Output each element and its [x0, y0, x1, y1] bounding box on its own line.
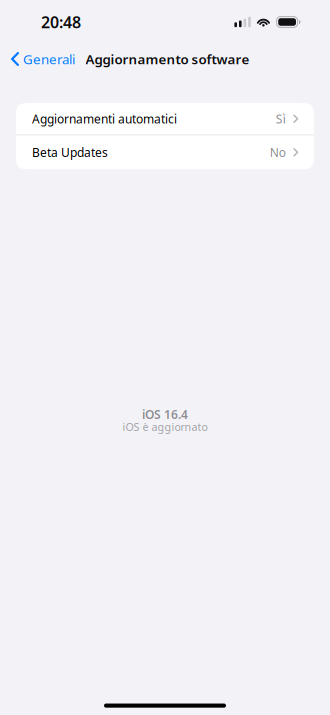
staticText: Aggiornamento software: [85, 50, 249, 68]
staticText: Generali: [23, 50, 75, 68]
staticText: iOS è aggiornato: [122, 420, 207, 434]
button[interactable]: Beta Updates: [16, 135, 314, 169]
staticText: Beta Updates: [32, 144, 108, 160]
button[interactable]: Aggiornamenti automatici: [16, 103, 314, 134]
staticText: No: [270, 144, 286, 160]
staticText: Sì: [276, 111, 286, 127]
staticText: 20:48: [41, 11, 81, 33]
button[interactable]: Back to Generali: [0, 44, 83, 74]
staticText: Aggiornamenti automatici: [32, 111, 177, 127]
staticText: iOS 16.4: [142, 406, 188, 422]
